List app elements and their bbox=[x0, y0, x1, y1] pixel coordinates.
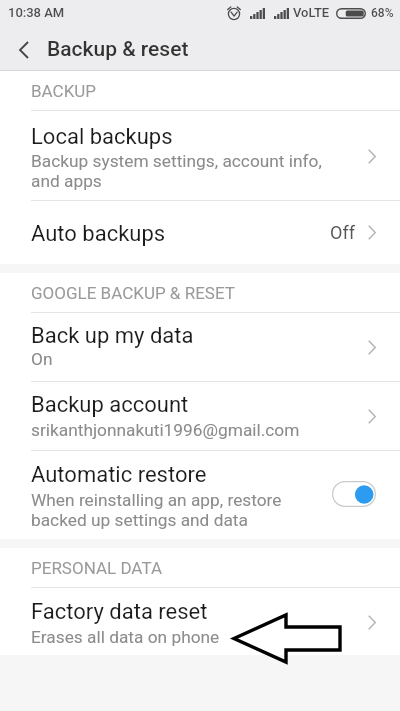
button[interactable]: Automatic restore bbox=[0, 451, 400, 539]
button[interactable]: Back bbox=[4, 28, 44, 71]
staticText: When reinstalling an app, restore backed… bbox=[31, 490, 313, 530]
staticText: BACKUP bbox=[31, 81, 97, 101]
button[interactable]: Local backups bbox=[0, 111, 400, 200]
staticText: Back up my data bbox=[31, 323, 194, 349]
staticText: Automatic restore bbox=[31, 462, 207, 488]
staticText: 68% bbox=[371, 6, 394, 20]
button[interactable]: Back up my data bbox=[0, 313, 400, 381]
button[interactable]: Auto backups bbox=[0, 201, 400, 264]
staticText: Auto backups bbox=[31, 221, 166, 247]
staticText: PERSONAL DATA bbox=[31, 558, 162, 578]
staticText: On bbox=[31, 349, 53, 369]
staticText: Off bbox=[330, 222, 355, 243]
staticText: Backup account bbox=[31, 392, 189, 418]
staticText: 10:38 AM bbox=[8, 5, 65, 20]
staticText: Factory data reset bbox=[31, 599, 208, 625]
staticText: VoLTE bbox=[293, 5, 330, 20]
staticText: srikanthjonnakuti1996@gmail.com bbox=[31, 420, 300, 440]
button[interactable]: Factory data reset bbox=[0, 588, 400, 655]
staticText: GOOGLE BACKUP & RESET bbox=[31, 283, 235, 303]
staticText: Erases all data on phone bbox=[31, 627, 220, 647]
button[interactable]: Automatic restore switch bbox=[332, 481, 376, 507]
button[interactable]: Backup account bbox=[0, 382, 400, 450]
staticText: Local backups bbox=[31, 124, 173, 150]
staticText: Backup & reset bbox=[47, 37, 189, 62]
staticText: Backup system settings, account info, an… bbox=[31, 151, 331, 191]
